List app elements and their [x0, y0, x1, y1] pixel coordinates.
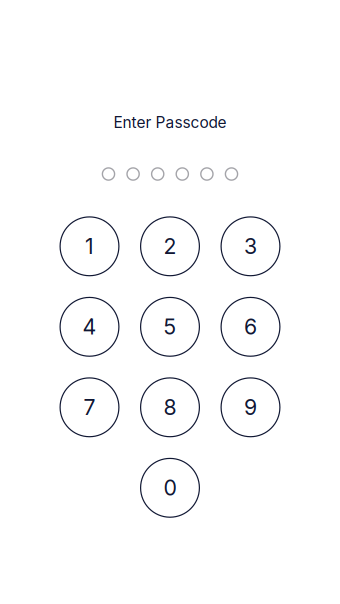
- staticText: 3: [244, 233, 257, 259]
- button[interactable]: 1: [59, 216, 119, 276]
- staticText: 9: [244, 394, 257, 420]
- button[interactable]: 7: [59, 377, 119, 437]
- button[interactable]: 5: [140, 297, 200, 357]
- button[interactable]: 0: [140, 458, 200, 518]
- button[interactable]: 9: [220, 377, 280, 437]
- button[interactable]: 8: [140, 377, 200, 437]
- button[interactable]: 3: [220, 216, 280, 276]
- button[interactable]: 6: [220, 297, 280, 357]
- button[interactable]: 2: [140, 216, 200, 276]
- button[interactable]: 4: [59, 297, 119, 357]
- staticText: 2: [163, 233, 176, 259]
- staticText: 1: [85, 233, 94, 259]
- staticText: 0: [163, 475, 176, 501]
- staticText: 6: [244, 314, 257, 340]
- staticText: 4: [82, 314, 96, 340]
- staticText: Enter Passcode: [113, 113, 226, 132]
- staticText: 8: [163, 394, 176, 420]
- staticText: 7: [83, 394, 95, 420]
- staticText: 5: [163, 314, 176, 340]
